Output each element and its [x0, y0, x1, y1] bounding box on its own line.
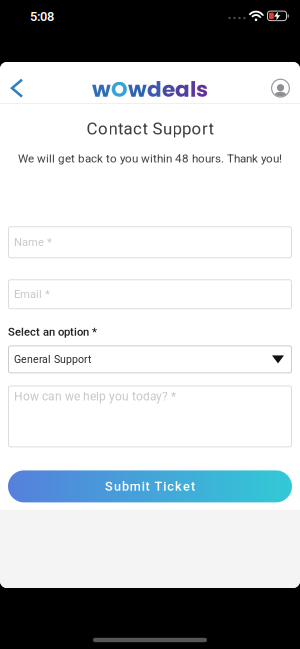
staticText: m	[130, 479, 141, 494]
staticText: w	[128, 74, 147, 104]
staticText: Name *	[14, 236, 52, 249]
staticText: n	[108, 119, 117, 139]
staticText: i	[142, 479, 145, 494]
button[interactable]: Select an option: General Support	[8, 345, 292, 373]
staticText: s	[196, 74, 208, 104]
staticText: e	[162, 74, 175, 104]
button[interactable]: Name	[8, 226, 292, 258]
staticText: General Support	[14, 353, 91, 365]
staticText: u	[114, 479, 121, 494]
staticText: u	[163, 119, 172, 139]
staticText: We will get back to you within 48 hours.…	[18, 152, 282, 165]
staticText: C	[86, 119, 97, 139]
staticText: o	[191, 119, 201, 139]
button[interactable]: S	[8, 470, 292, 502]
staticText: Email *	[14, 288, 50, 301]
staticText: 5:08	[30, 9, 54, 24]
staticText: Select an option *	[8, 325, 97, 338]
staticText: w	[92, 74, 111, 104]
staticText: r	[202, 119, 208, 139]
staticText: i	[163, 479, 166, 494]
staticText: S	[105, 479, 113, 494]
staticText: k	[175, 479, 182, 494]
staticText: t	[191, 479, 195, 494]
staticText: T	[154, 479, 162, 494]
button[interactable]: Back	[0, 70, 22, 107]
button[interactable]: How can we help you today?	[8, 385, 292, 447]
staticText: a	[123, 119, 132, 139]
staticText: O	[111, 75, 128, 104]
button[interactable]: Email	[8, 279, 292, 309]
staticText: t	[118, 119, 123, 139]
staticText: c	[133, 119, 142, 139]
button[interactable]: Profile	[271, 69, 300, 108]
staticText: p	[172, 119, 181, 139]
staticText: l	[190, 74, 196, 104]
staticText: o	[98, 119, 108, 139]
staticText: d	[147, 74, 162, 104]
staticText: How can we help you today? *	[14, 389, 176, 403]
staticText: a	[175, 74, 190, 104]
staticText: b	[122, 479, 129, 494]
staticText: t	[208, 119, 213, 139]
staticText: e	[183, 479, 190, 494]
staticText: p	[182, 119, 191, 139]
staticText: c	[167, 479, 174, 494]
staticText: t	[146, 479, 150, 494]
staticText: S	[152, 119, 162, 139]
staticText: t	[142, 119, 147, 139]
